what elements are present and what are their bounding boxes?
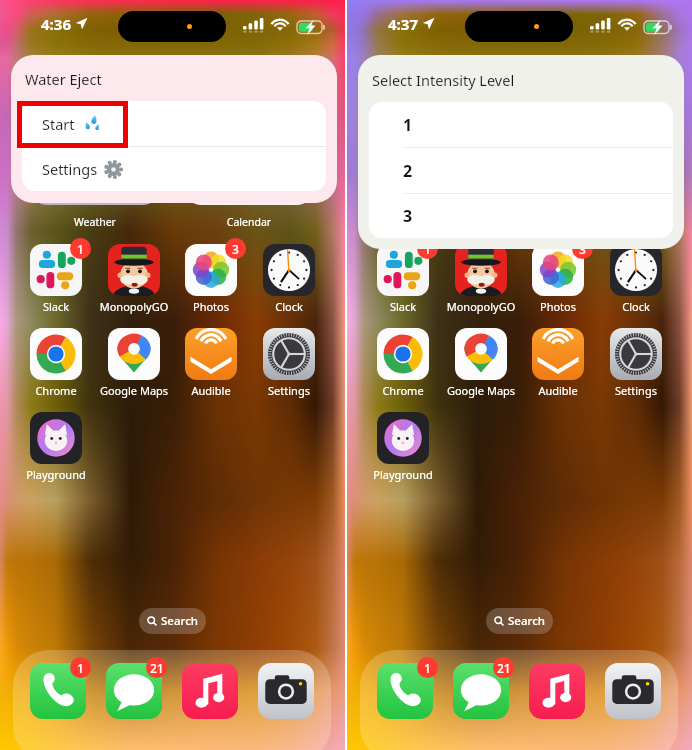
staticText: Settings	[42, 159, 98, 179]
button[interactable]: Music	[529, 663, 585, 719]
button[interactable]: Settings	[251, 328, 327, 398]
button[interactable]: Settings	[22, 147, 326, 191]
staticText: Weather	[375, 215, 509, 229]
button[interactable]: 3	[173, 244, 249, 314]
staticText: 1	[77, 660, 84, 676]
staticText: Start	[42, 114, 75, 134]
button[interactable]: 2	[369, 148, 673, 193]
staticText: Google Maps	[96, 383, 172, 398]
staticText: 4:36	[41, 14, 71, 34]
staticText: 1	[424, 660, 431, 676]
button[interactable]: Music	[182, 663, 238, 719]
staticText: 21	[497, 660, 511, 676]
button[interactable]: 3	[369, 194, 673, 238]
staticText: 21	[150, 660, 164, 676]
staticText: Audible	[520, 383, 596, 398]
button[interactable]: MonopolyGO	[443, 244, 519, 314]
staticText: Playground	[18, 467, 94, 482]
staticText: Clock	[598, 299, 674, 314]
staticText: Chrome	[365, 383, 441, 398]
staticText: MonopolyGO	[96, 299, 172, 314]
staticText: 2	[403, 160, 413, 182]
button[interactable]: Search	[139, 608, 206, 634]
button[interactable]: Settings	[598, 328, 674, 398]
staticText: Calendar	[182, 215, 316, 229]
button[interactable]: Chrome	[18, 328, 94, 398]
staticText: Slack	[365, 299, 441, 314]
staticText: Chrome	[18, 383, 94, 398]
staticText: MonopolyGO	[443, 299, 519, 314]
staticText: Photos	[173, 299, 249, 314]
staticText: 3	[403, 205, 413, 227]
button[interactable]: 1	[369, 102, 673, 147]
staticText: Slack	[18, 299, 94, 314]
staticText: 4:37	[388, 14, 418, 34]
staticText: 3	[232, 241, 239, 257]
button[interactable]: Google Maps	[96, 328, 172, 398]
staticText: 1	[403, 114, 413, 136]
button[interactable]: Clock	[598, 244, 674, 314]
button[interactable]: Clock	[251, 244, 327, 314]
button[interactable]: Messages	[106, 663, 162, 719]
staticText: Settings	[251, 383, 327, 398]
button[interactable]: Start	[22, 101, 326, 146]
button[interactable]: 1	[18, 244, 94, 314]
button[interactable]: Phone	[377, 663, 433, 719]
staticText: Search	[161, 613, 198, 629]
button[interactable]: 3	[520, 244, 596, 314]
staticText: Weather	[28, 215, 162, 229]
button[interactable]: Google Maps	[443, 328, 519, 398]
button[interactable]: Audible	[520, 328, 596, 398]
staticText: 1	[424, 241, 431, 257]
button[interactable]: Phone	[30, 663, 86, 719]
button[interactable]: Chrome	[365, 328, 441, 398]
staticText: Clock	[251, 299, 327, 314]
button[interactable]: Camera	[605, 663, 661, 719]
button[interactable]: 1	[365, 244, 441, 314]
button[interactable]: Search	[486, 608, 553, 634]
button[interactable]: Camera	[258, 663, 314, 719]
staticText: Water Eject	[25, 69, 102, 89]
staticText: Audible	[173, 383, 249, 398]
staticText: Search	[508, 613, 545, 629]
staticText: Photos	[520, 299, 596, 314]
staticText: Settings	[598, 383, 674, 398]
button[interactable]: Playground	[365, 412, 441, 482]
button[interactable]: Playground	[18, 412, 94, 482]
staticText: 1	[77, 241, 84, 257]
button[interactable]: Messages	[453, 663, 509, 719]
staticText: Google Maps	[443, 383, 519, 398]
staticText: 3	[579, 241, 586, 257]
staticText: Select Intensity Level	[372, 70, 515, 90]
staticText: Playground	[365, 467, 441, 482]
button[interactable]: Audible	[173, 328, 249, 398]
button[interactable]: MonopolyGO	[96, 244, 172, 314]
